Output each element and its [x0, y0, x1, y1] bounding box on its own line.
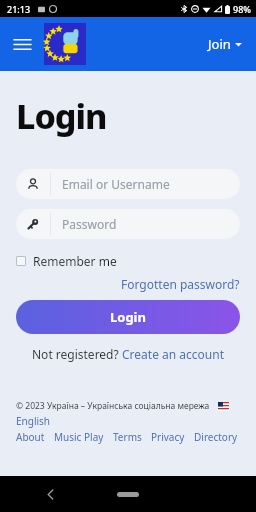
staticText: Remember me	[33, 253, 117, 269]
button[interactable]: Terms	[113, 430, 142, 444]
button[interactable]: Directory	[194, 430, 238, 444]
staticText: Password	[62, 216, 117, 232]
button[interactable]: Remember me	[16, 251, 117, 271]
button[interactable]: English	[16, 414, 51, 428]
staticText: Join	[208, 35, 231, 53]
other: Password	[27, 218, 39, 230]
staticText: Email or Username	[62, 176, 170, 192]
button[interactable]: Privacy	[151, 430, 185, 444]
button[interactable]: Music Play	[54, 430, 104, 444]
button[interactable]: Password	[16, 209, 240, 239]
button[interactable]: Join	[204, 31, 246, 57]
staticText: 98%	[233, 3, 251, 15]
button[interactable]: Language	[218, 402, 229, 411]
button[interactable]: Create an account	[122, 346, 224, 362]
staticText: Not registered?	[32, 346, 122, 362]
button[interactable]: Forgotten password?	[121, 276, 240, 292]
button[interactable]: About	[16, 430, 45, 444]
other: User	[27, 178, 39, 190]
button[interactable]: Home	[117, 492, 139, 497]
button[interactable]: User	[16, 169, 240, 199]
button[interactable]: Logo	[44, 23, 86, 65]
staticText: Login	[16, 93, 107, 139]
staticText: © 2023 Україна – Українська соціальна ме…	[16, 400, 210, 412]
button[interactable]: Menu	[8, 30, 36, 58]
staticText: 21:13	[7, 3, 31, 15]
staticText: Login	[110, 308, 146, 326]
button[interactable]: Login	[16, 300, 240, 334]
button[interactable]: Back	[40, 484, 60, 504]
